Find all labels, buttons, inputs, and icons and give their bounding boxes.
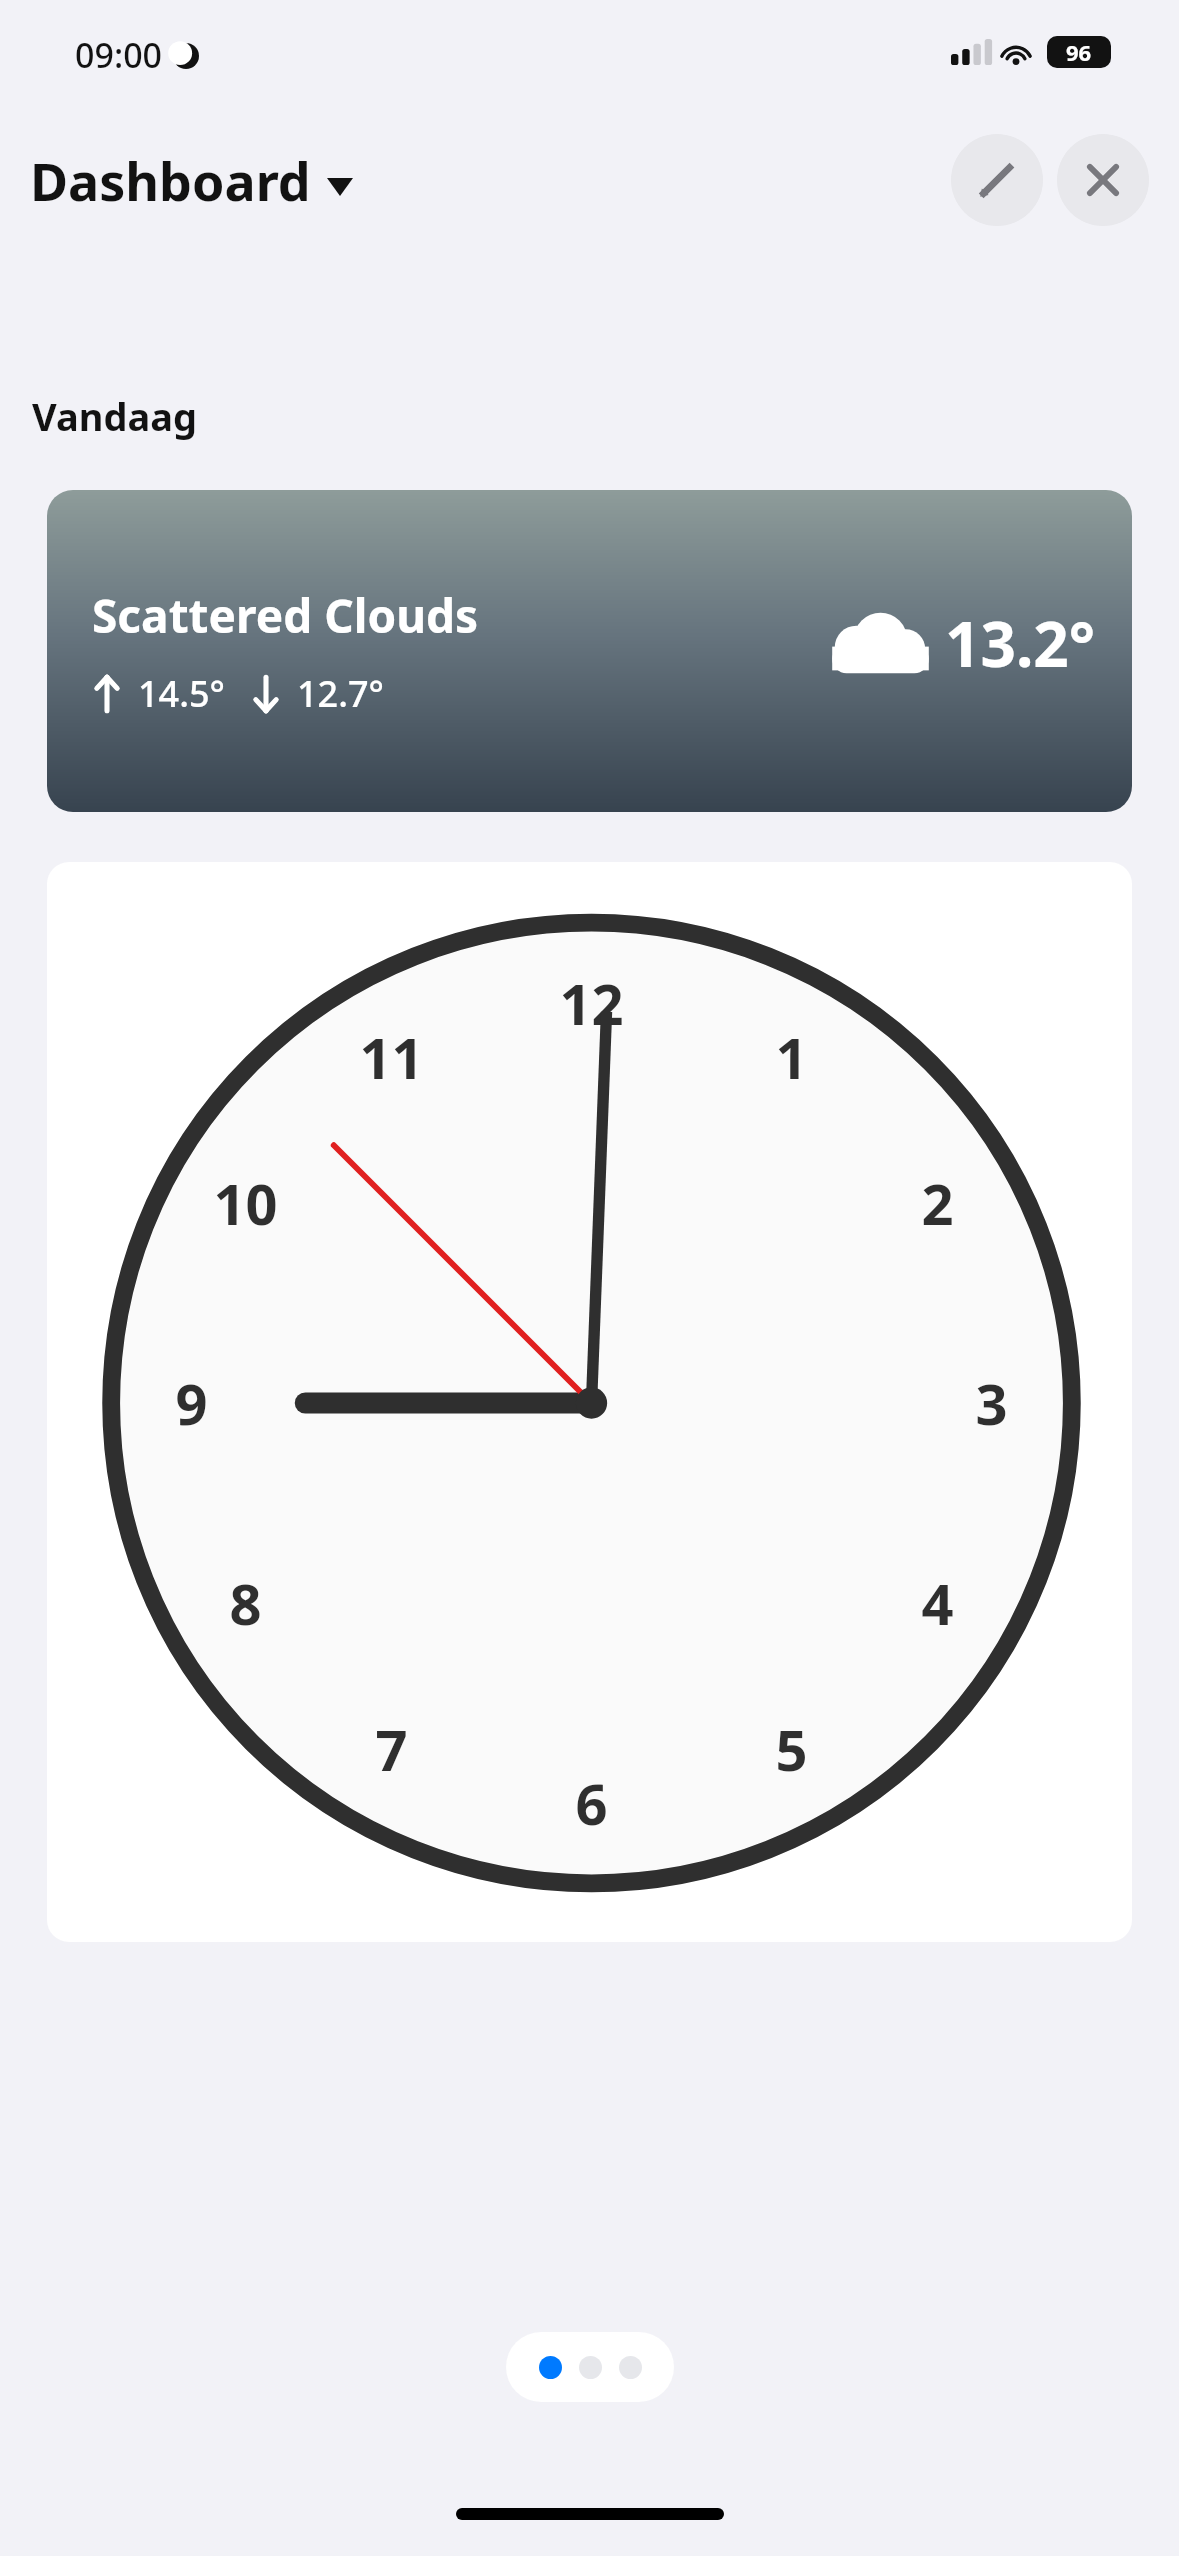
button[interactable]: Dashboard: [30, 145, 353, 216]
staticText: 5: [775, 1711, 808, 1787]
button[interactable]: [506, 2332, 674, 2402]
staticText: Vandaag: [32, 390, 197, 442]
staticText: 1: [775, 1019, 808, 1095]
staticText: 12: [559, 965, 624, 1041]
button[interactable]: Edit dashboard: [951, 134, 1043, 226]
staticText: 09:00: [75, 32, 163, 78]
staticText: 11: [359, 1019, 424, 1095]
staticText: Scattered Clouds: [92, 584, 479, 647]
staticText: 7: [375, 1711, 408, 1787]
staticText: 14.5°: [138, 669, 225, 718]
button[interactable]: Close: [1057, 134, 1149, 226]
staticText: 9: [175, 1365, 208, 1441]
staticText: 4: [921, 1565, 954, 1641]
button[interactable]: Analog clock showing 09:00: [47, 862, 1132, 1942]
staticText: 3: [975, 1365, 1008, 1441]
staticText: Dashboard: [30, 145, 311, 216]
staticText: 13.2°: [945, 601, 1096, 685]
button[interactable]: Scattered Clouds: [47, 490, 1132, 812]
staticText: 96: [1066, 37, 1092, 67]
staticText: 12.7°: [297, 669, 384, 718]
other: Analog clock showing 09:00: [47, 862, 1132, 1942]
staticText: 10: [213, 1165, 278, 1241]
staticText: 6: [575, 1765, 608, 1841]
staticText: 2: [921, 1165, 954, 1241]
staticText: 8: [229, 1565, 262, 1641]
